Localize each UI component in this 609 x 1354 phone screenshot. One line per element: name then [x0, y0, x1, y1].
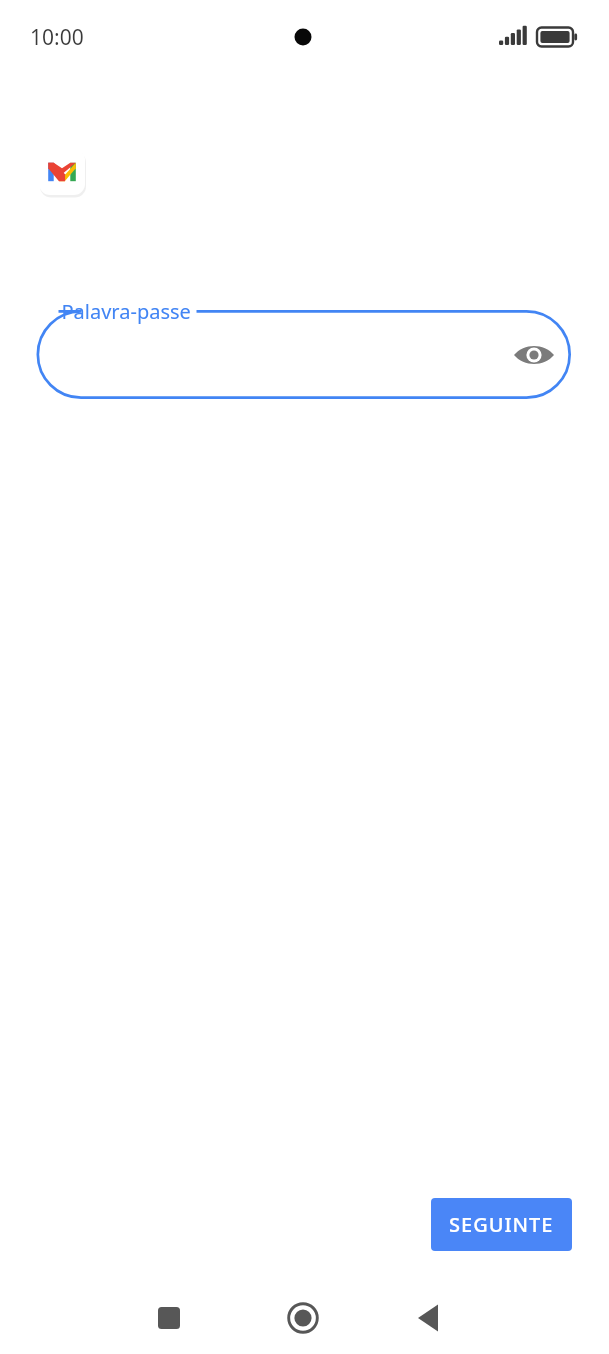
button[interactable]: Palavra-passe — [36, 309, 571, 400]
button[interactable]: SEGUINTE — [431, 1198, 572, 1251]
button[interactable]: Gmail — [39, 149, 85, 195]
staticText: SEGUINTE — [449, 1211, 554, 1238]
button[interactable]: Mostrar palavra-passe — [508, 329, 560, 381]
button[interactable]: Recents — [139, 1288, 199, 1348]
button[interactable]: Back — [399, 1288, 459, 1348]
button[interactable]: Home — [273, 1288, 333, 1348]
